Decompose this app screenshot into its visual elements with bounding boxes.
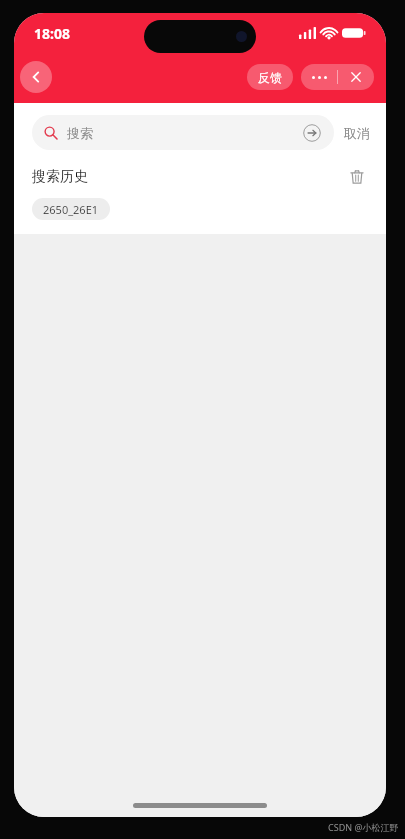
staticText: 取消 (344, 125, 370, 141)
staticText: 搜索 (67, 125, 93, 141)
staticText: 搜索历史 (32, 168, 88, 186)
staticText: CSDN @小松江野 (328, 821, 399, 833)
staticText: 反馈 (258, 70, 282, 85)
button[interactable]: 取消 (334, 125, 372, 141)
button[interactable]: 反馈 (247, 64, 293, 90)
button[interactable]: 搜索 (32, 115, 334, 150)
button[interactable]: Clear history (346, 166, 368, 188)
staticText: 2650_26E1 (43, 202, 99, 217)
button[interactable]: More options (301, 64, 337, 90)
button[interactable]: Search (302, 123, 322, 143)
button[interactable]: Back (20, 61, 52, 93)
button[interactable]: 2650_26E1 (32, 198, 110, 220)
staticText: 18:08 (34, 24, 70, 43)
button[interactable]: Close (338, 64, 374, 90)
